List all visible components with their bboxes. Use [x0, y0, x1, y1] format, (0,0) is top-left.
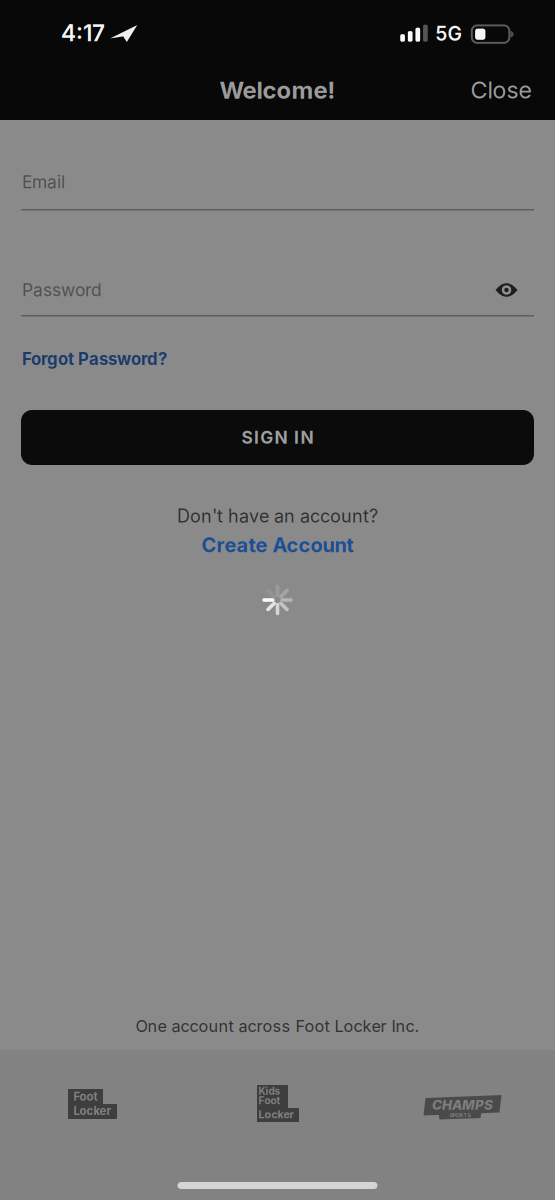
staticText: Password — [22, 279, 102, 300]
staticText: Don't have an account? — [177, 505, 378, 527]
staticText: SPORTS — [449, 1112, 470, 1119]
button[interactable]: Close — [470, 76, 531, 104]
staticText: Forgot Password? — [22, 349, 167, 369]
staticText: CHAMPS — [432, 1097, 493, 1113]
staticText: SIGN IN — [242, 427, 313, 448]
button[interactable]: Create Account — [201, 530, 353, 560]
staticText: Create Account — [201, 533, 353, 557]
staticText: One account across Foot Locker Inc. — [135, 1016, 419, 1036]
staticText: Locker — [258, 1108, 293, 1121]
staticText: Foot — [73, 1090, 97, 1103]
staticText: Close — [470, 76, 531, 104]
staticText: 4:17 — [61, 19, 105, 47]
staticText: Foot — [258, 1095, 280, 1107]
button[interactable]: Forgot Password? — [22, 349, 167, 369]
staticText: Welcome! — [219, 75, 335, 104]
button[interactable]: SIGN IN — [21, 410, 534, 465]
button[interactable]: Show password — [495, 280, 518, 300]
staticText: Email — [22, 171, 65, 192]
staticText: Locker — [74, 1104, 112, 1118]
staticText: Kids — [258, 1085, 280, 1097]
staticText: 5G — [435, 22, 461, 45]
